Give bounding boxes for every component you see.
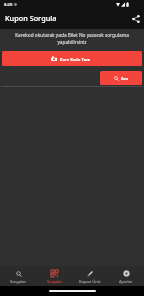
- button[interactable]: Kupon Üret: [72, 266, 108, 286]
- button[interactable]: Sorgula: [36, 266, 72, 286]
- button[interactable]: Ayarlar: [108, 266, 144, 286]
- button[interactable]: Kare Kodu Tara: [2, 51, 142, 66]
- button[interactable]: Sorgular: [0, 266, 36, 286]
- staticText: Sorgular: [10, 279, 27, 284]
- staticText: Sorgula: [47, 279, 62, 284]
- staticText: 8:20: [4, 2, 13, 8]
- staticText: Karekod okutarak yada Bilet No yazarak s…: [13, 32, 131, 46]
- staticText: Ara: [121, 76, 128, 81]
- staticText: Kupon Sorgula: [5, 13, 57, 23]
- staticText: Kare Kodu Tara: [60, 57, 90, 62]
- staticText: Kupon Üret: [79, 279, 101, 284]
- button[interactable]: Share: [130, 13, 142, 25]
- button[interactable]: Ara: [100, 71, 142, 85]
- staticText: Ayarlar: [119, 279, 133, 284]
